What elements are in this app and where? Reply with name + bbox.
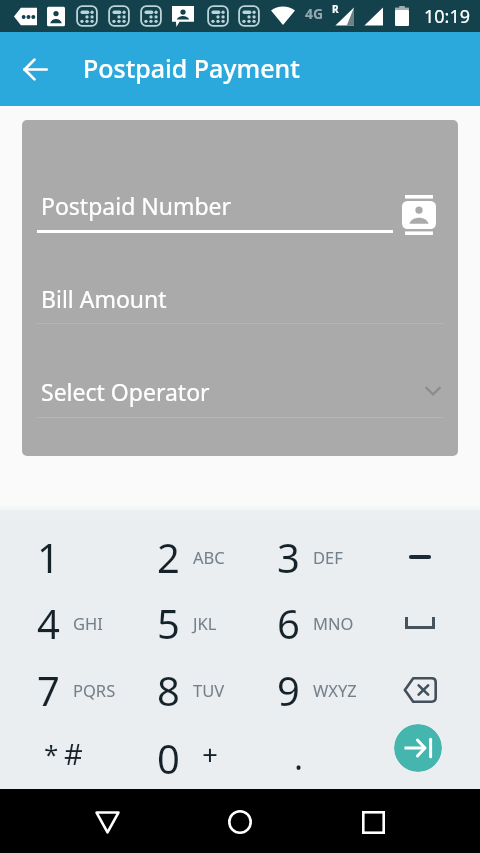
button[interactable]: Back [11,45,59,93]
button[interactable]: + [182,713,242,779]
staticText: 10:19 [424,4,471,29]
staticText: 2 [157,530,180,584]
staticText: Postpaid Payment [83,51,300,85]
staticText: Bill Amount [41,283,167,314]
staticText: # [64,734,83,773]
staticText: 0 [157,731,180,785]
button[interactable]: # [44,712,104,778]
button[interactable]: 0 [120,725,240,791]
staticText: . [294,734,304,780]
button[interactable]: 2 [120,524,240,590]
staticText: 3 [277,530,300,584]
button[interactable]: Home [216,798,264,846]
staticText: + [202,735,219,773]
staticText: * [44,736,59,771]
button[interactable]: 3 [240,524,360,590]
button[interactable]: 8 [120,657,240,723]
button[interactable]: 9 [240,657,360,723]
button[interactable]: Select Operator [22,365,458,415]
staticText: 7 [37,663,60,717]
button[interactable]: Recents [349,798,397,846]
staticText: PQRS [73,679,116,701]
staticText: DEF [313,546,343,568]
staticText: WXYZ [313,679,357,701]
button[interactable]: 4 [0,590,120,656]
button[interactable]: . [274,712,334,778]
staticText: JKL [193,612,217,634]
staticText: 9 [277,663,300,717]
button[interactable]: Backspace [390,657,450,723]
button[interactable]: 5 [120,590,240,656]
button[interactable]: Back [83,798,131,846]
staticText: 4 [37,596,60,650]
button[interactable]: Next [394,724,442,772]
button[interactable]: 1 [0,524,120,590]
staticText: 5 [157,596,180,650]
staticText: TUV [193,679,225,701]
staticText: Select Operator [41,376,210,407]
staticText: Postpaid Number [41,190,232,221]
staticText: 6 [277,596,300,650]
button[interactable]: Dash [390,524,450,590]
button[interactable]: 7 [0,657,120,723]
button[interactable]: 6 [240,590,360,656]
staticText: R [332,2,339,16]
staticText: GHI [73,612,103,634]
button[interactable]: * [24,714,84,780]
staticText: ABC [193,546,225,568]
button[interactable]: Space [390,590,450,656]
staticText: 4G [305,4,324,23]
button[interactable]: Pick contact [396,191,442,239]
staticText: MNO [313,612,354,634]
staticText: 1 [37,530,60,584]
staticText: 8 [157,663,180,717]
